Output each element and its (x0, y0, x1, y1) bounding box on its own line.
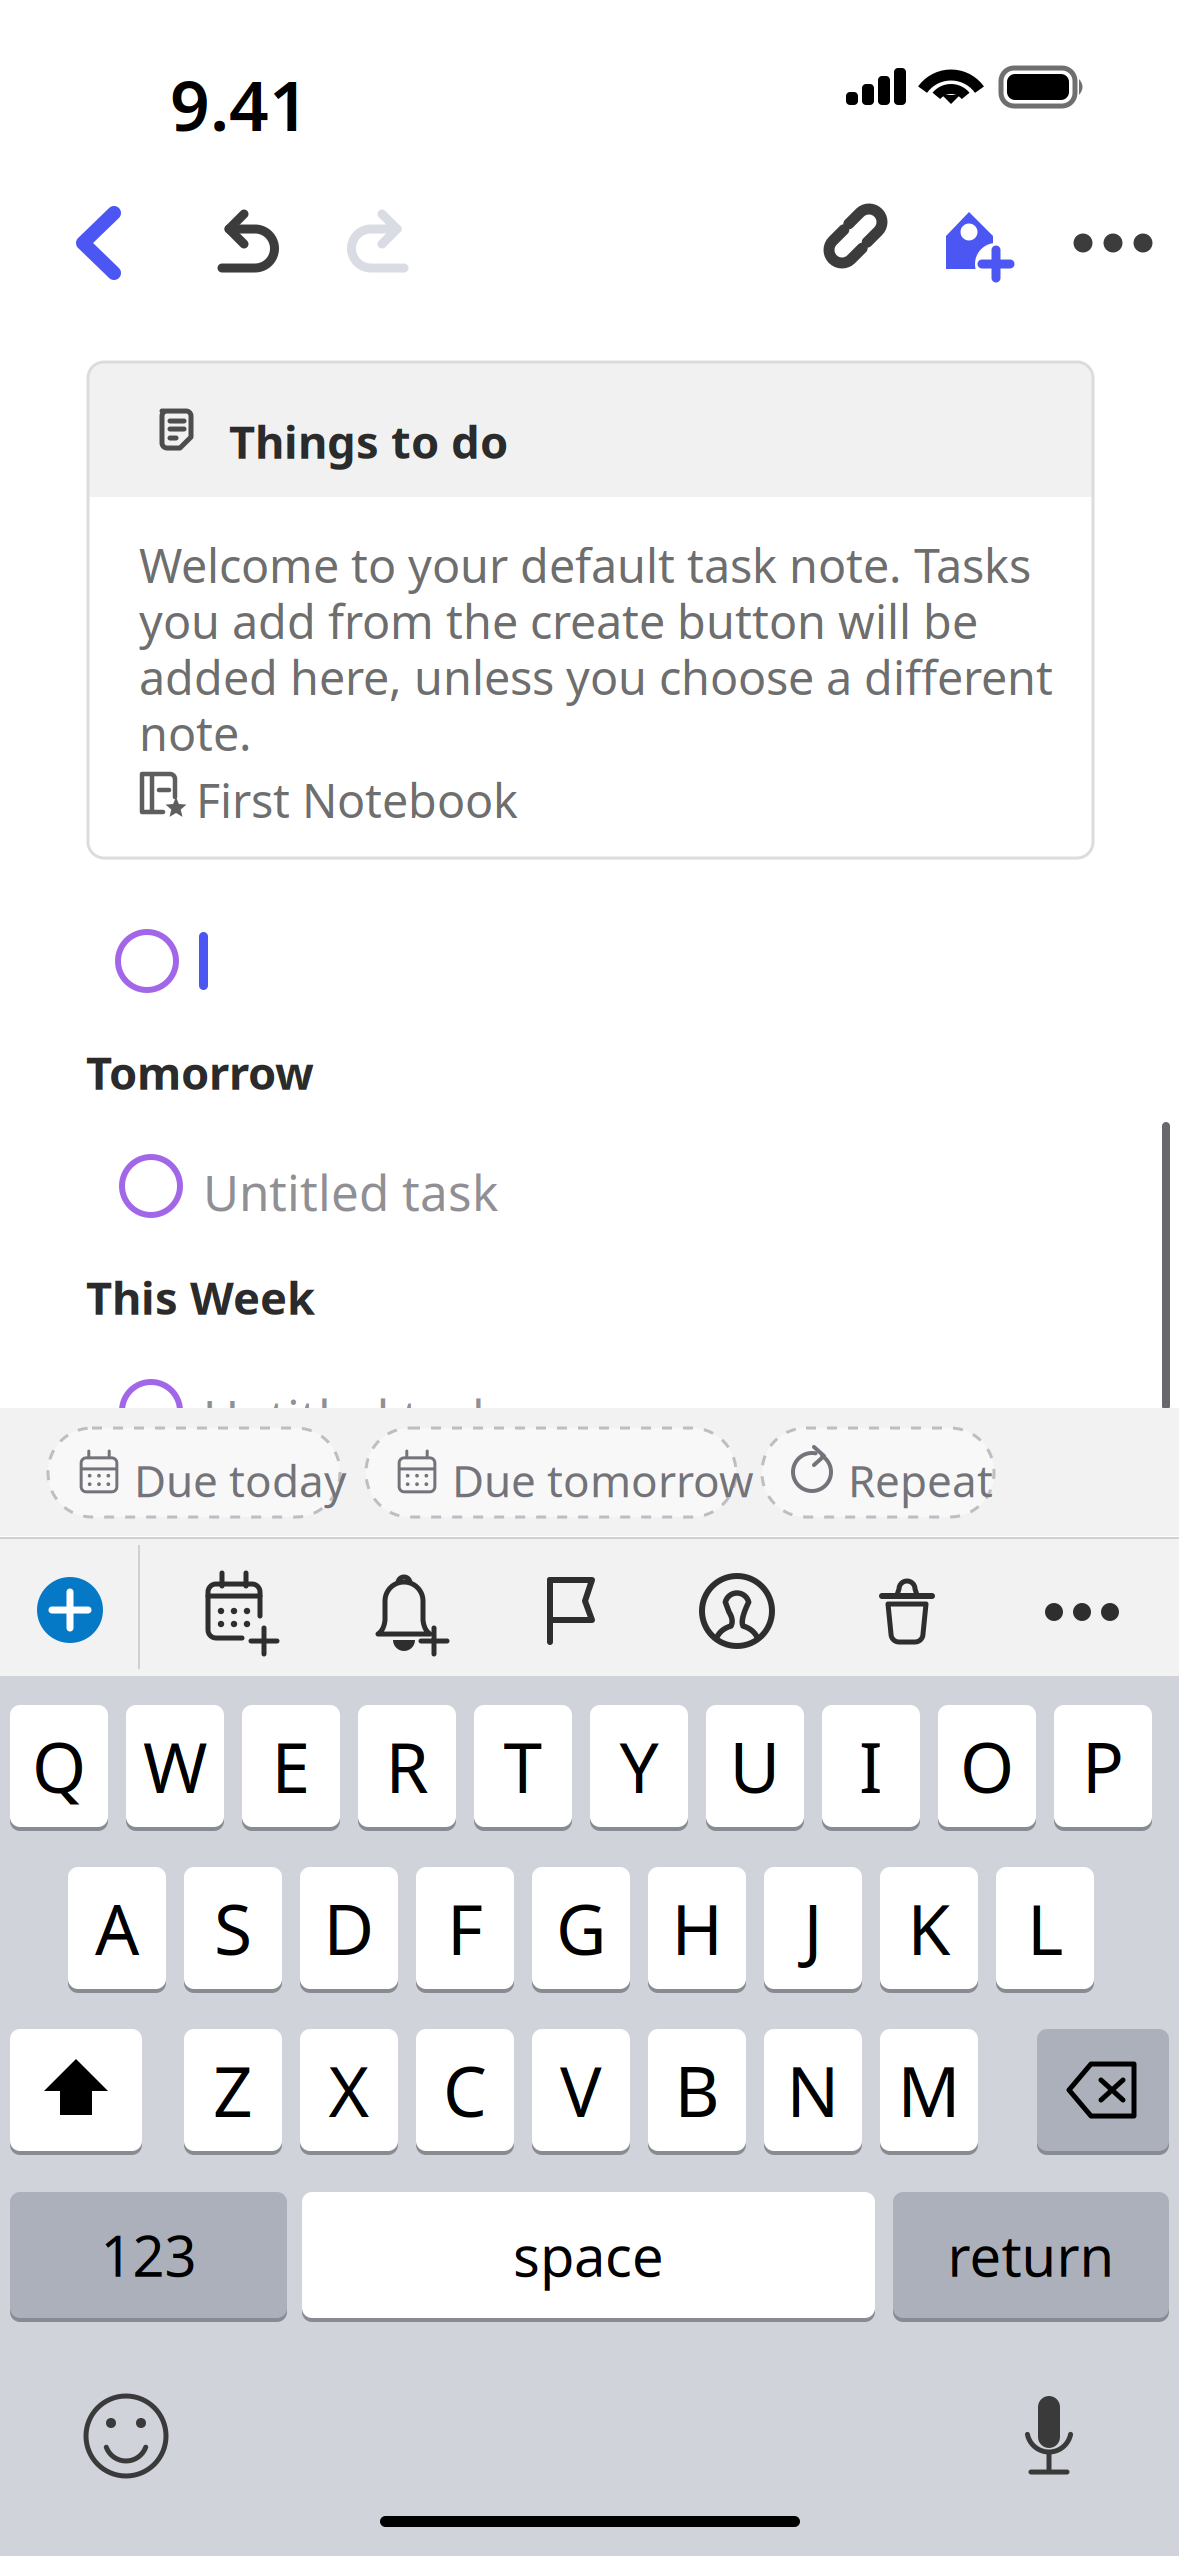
staticText: 123 (100, 2218, 196, 2292)
staticText: Tomorrow (86, 1042, 314, 1102)
staticText: L (1027, 1882, 1063, 1974)
button[interactable]: I (0, 0, 1179, 2556)
button[interactable]: R (0, 0, 1179, 2556)
button[interactable]: V (0, 0, 1179, 2556)
button[interactable]: Create (0, 0, 1179, 2556)
staticText: Untitled task (203, 1159, 498, 1224)
button[interactable]: Emoji (0, 0, 1179, 2556)
button[interactable]: L (0, 0, 1179, 2556)
staticText: M (897, 2044, 960, 2136)
staticText: P (1082, 1720, 1124, 1812)
button[interactable]: Shift (0, 0, 1179, 2556)
staticText: O (960, 1720, 1014, 1812)
staticText: V (560, 2044, 602, 2136)
staticText: Untitled task (203, 1384, 498, 1449)
staticText: K (907, 1882, 950, 1974)
staticText: F (447, 1882, 483, 1974)
button[interactable]: Due today (0, 0, 1179, 2556)
button[interactable]: K (0, 0, 1179, 2556)
staticText: Q (32, 1720, 86, 1812)
staticText: X (328, 2044, 369, 2136)
staticText: B (674, 2044, 719, 2136)
staticText: N (786, 2044, 839, 2136)
staticText: This Week (86, 1267, 315, 1327)
button[interactable]: O (0, 0, 1179, 2556)
staticText: G (556, 1882, 606, 1974)
button[interactable]: P (0, 0, 1179, 2556)
staticText: First Notebook (196, 769, 518, 831)
staticText: A (95, 1882, 139, 1974)
button[interactable]: T (0, 0, 1179, 2556)
staticText: space (513, 2218, 664, 2292)
button[interactable]: return (0, 0, 1179, 2556)
staticText: J (803, 1882, 822, 1974)
staticText: T (503, 1720, 542, 1812)
staticText: Due tomorrow (452, 1451, 754, 1509)
staticText: R (385, 1720, 428, 1812)
button[interactable]: F (0, 0, 1179, 2556)
button[interactable]: D (0, 0, 1179, 2556)
button[interactable]: Delete (0, 0, 1179, 2556)
button[interactable]: G (0, 0, 1179, 2556)
staticText: E (271, 1720, 310, 1812)
staticText: W (143, 1720, 207, 1812)
button[interactable]: C (0, 0, 1179, 2556)
button[interactable]: Y (0, 0, 1179, 2556)
button[interactable]: W (0, 0, 1179, 2556)
button[interactable]: Q (0, 0, 1179, 2556)
staticText: I (859, 1720, 883, 1812)
button[interactable]: J (0, 0, 1179, 2556)
button[interactable]: space (0, 0, 1179, 2556)
staticText: Z (213, 2044, 253, 2136)
button[interactable]: B (0, 0, 1179, 2556)
button[interactable]: S (0, 0, 1179, 2556)
button[interactable]: X (0, 0, 1179, 2556)
button[interactable]: Z (0, 0, 1179, 2556)
button[interactable]: Repeat (0, 0, 1179, 2556)
staticText: Due today (134, 1451, 346, 1509)
staticText: note. (139, 702, 252, 764)
staticText: Repeat (848, 1451, 993, 1509)
button[interactable]: U (0, 0, 1179, 2556)
staticText: D (323, 1882, 374, 1974)
staticText: C (443, 2044, 487, 2136)
staticText: H (671, 1882, 722, 1974)
staticText: Welcome to your default task note. Tasks (139, 534, 1031, 596)
staticText: return (947, 2218, 1114, 2292)
button[interactable]: H (0, 0, 1179, 2556)
button[interactable]: Dictate (0, 0, 1179, 2556)
staticText: Things to do (229, 411, 508, 471)
staticText: added here, unless you choose a differen… (139, 646, 1053, 708)
button[interactable]: A (0, 0, 1179, 2556)
button[interactable]: E (0, 0, 1179, 2556)
staticText: S (214, 1882, 252, 1974)
button[interactable]: 123 (0, 0, 1179, 2556)
staticText: Y (619, 1720, 658, 1812)
button[interactable]: N (0, 0, 1179, 2556)
button[interactable]: M (0, 0, 1179, 2556)
staticText: U (729, 1720, 780, 1812)
staticText: 9.41 (170, 58, 309, 150)
staticText: you add from the create button will be (139, 590, 978, 652)
button[interactable]: Due tomorrow (0, 0, 1179, 2556)
